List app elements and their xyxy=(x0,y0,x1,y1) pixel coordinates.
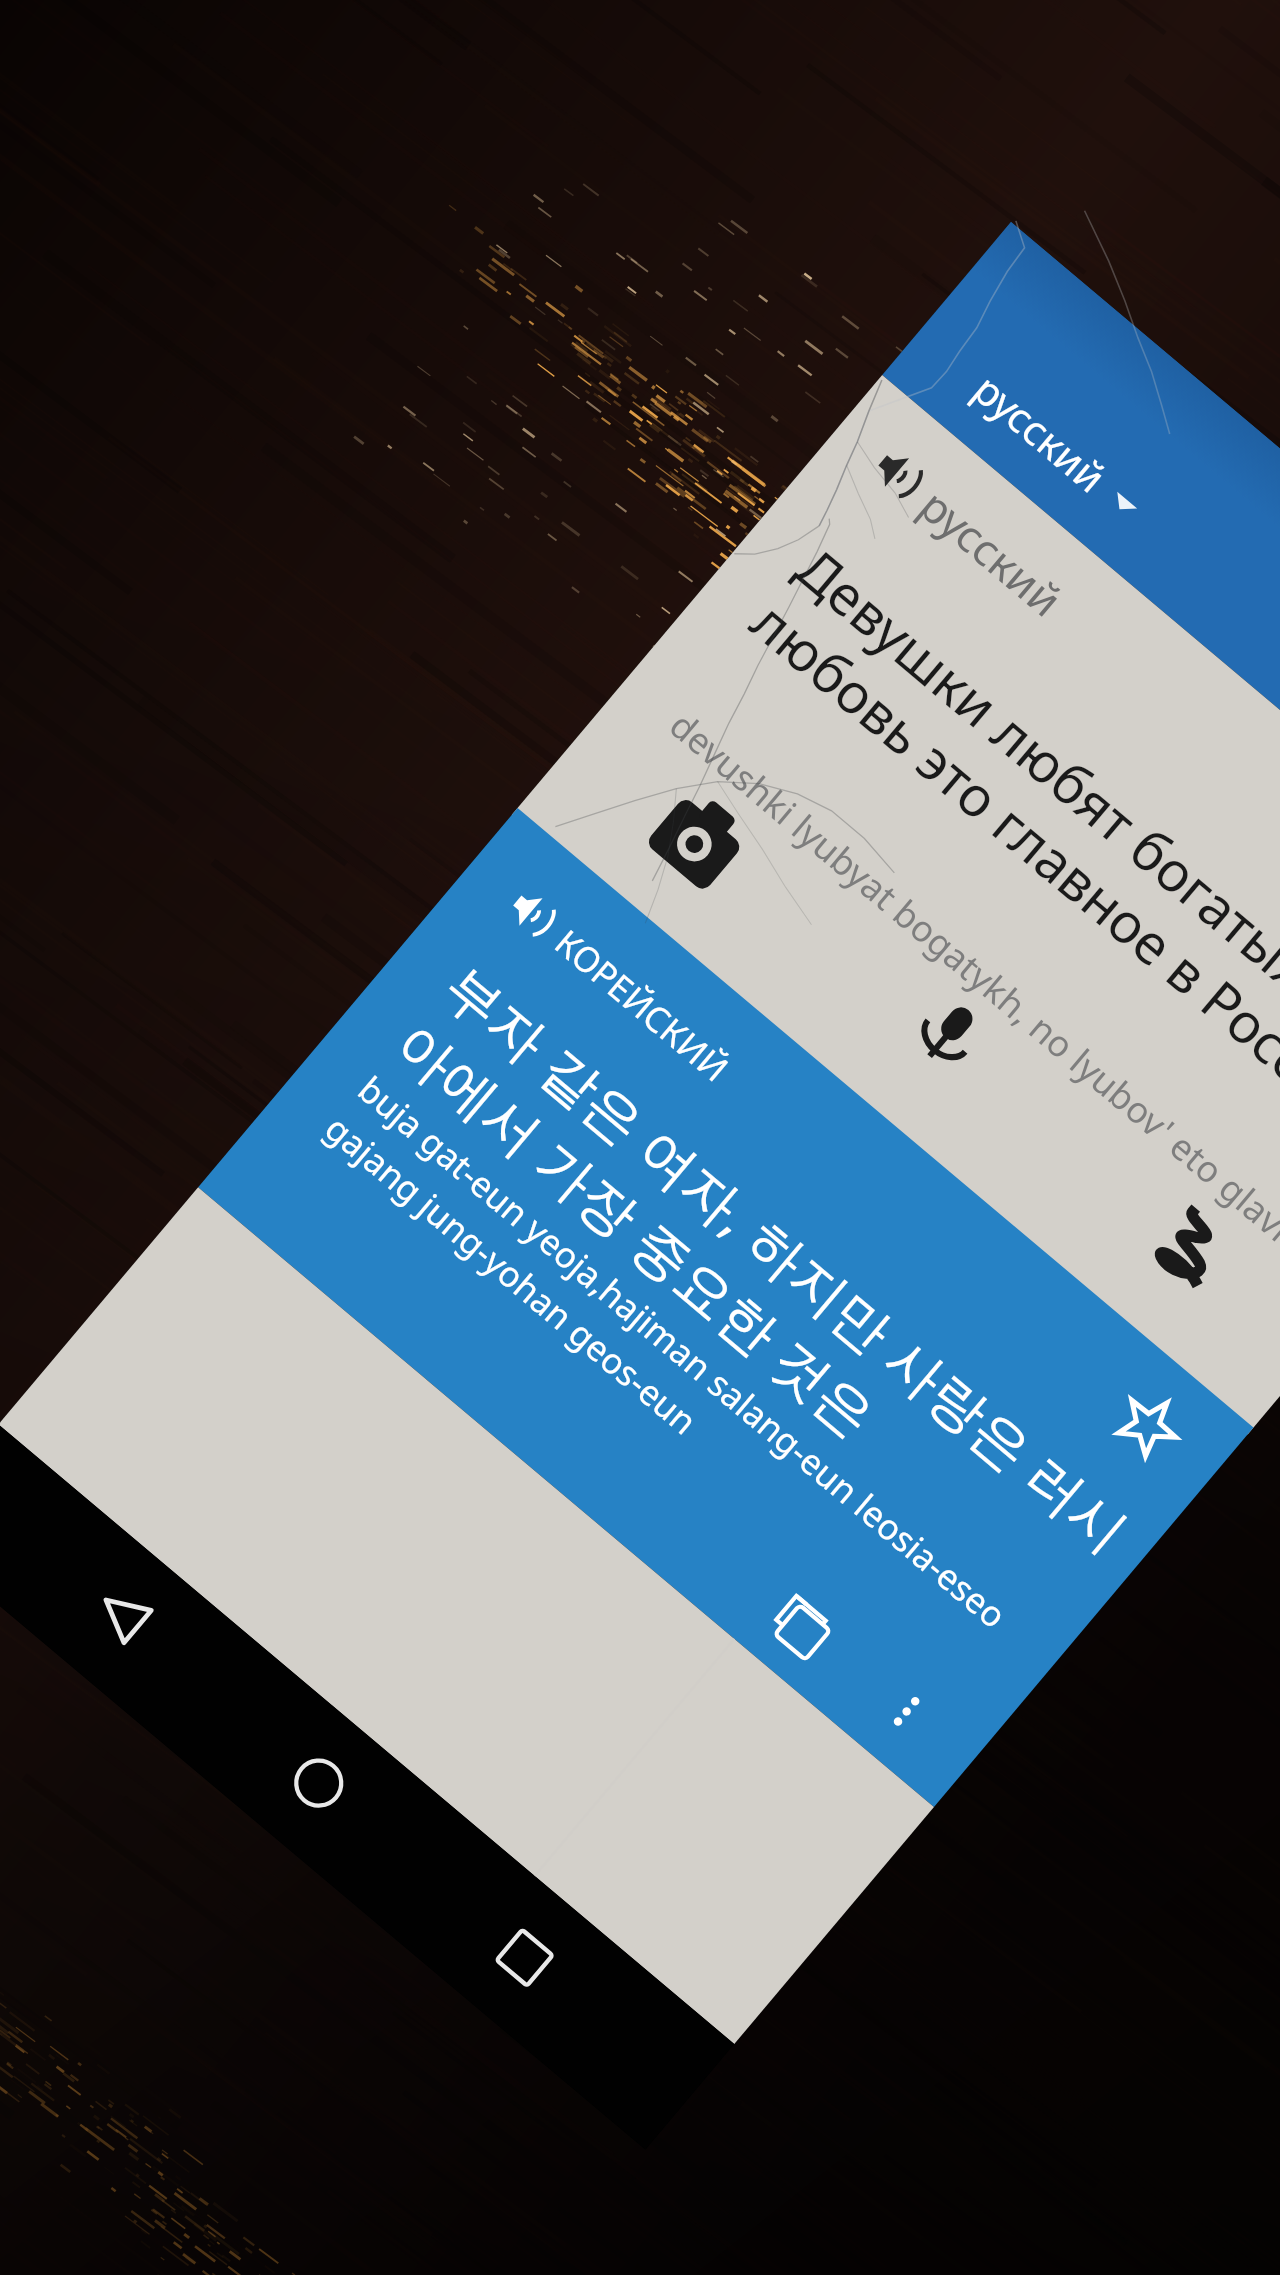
staticText: Девушки любят богатых, но любовь это гла… xyxy=(737,530,1280,1141)
button[interactable]: Home xyxy=(212,1679,424,1888)
button[interactable]: Copy translation xyxy=(737,1557,872,1693)
button[interactable]: Handwriting input xyxy=(1112,1167,1267,1322)
button[interactable]: Camera input xyxy=(621,760,776,915)
button[interactable]: Recent apps xyxy=(419,1853,630,2062)
button[interactable]: русский xyxy=(860,434,1132,678)
button[interactable]: Save to phrasebook xyxy=(1081,1357,1216,1492)
button[interactable]: КОРЕЙСКИЙ xyxy=(496,876,781,1129)
button[interactable]: русский xyxy=(956,353,1196,572)
staticText: buja gat-eun yeoja,hajiman salang-eun le… xyxy=(316,1065,1016,1677)
button[interactable]: More options xyxy=(850,1654,963,1767)
button[interactable]: Voice input xyxy=(871,956,1026,1111)
staticText: русский xyxy=(963,361,1119,505)
staticText: русский xyxy=(908,475,1075,629)
staticText: КОРЕЙСКИЙ xyxy=(545,919,739,1092)
staticText: 부자 같은 여자, 하지만 사랑은 러시 아에서 가장 중요한 것은 xyxy=(381,947,1145,1625)
button[interactable]: Back xyxy=(14,1512,225,1721)
staticText: devushki lyubyat bogatykh, no lyubov' et… xyxy=(660,701,1280,1374)
